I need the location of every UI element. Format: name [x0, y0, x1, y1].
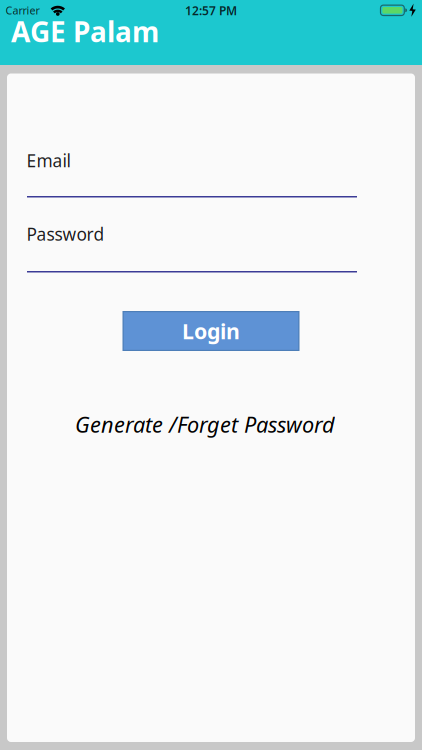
staticText: Password	[26, 222, 104, 245]
button[interactable]: Password	[27, 223, 357, 272]
staticText: AGE Palam	[11, 13, 159, 50]
staticText: Login	[182, 317, 240, 345]
button[interactable]: Email	[27, 150, 357, 197]
button[interactable]: Login	[122, 311, 299, 351]
staticText: Carrier	[5, 3, 39, 17]
staticText: Generate /Forget Password	[75, 409, 335, 439]
staticText: 12:57 PM	[185, 3, 237, 18]
button[interactable]: Generate /Forget Password	[75, 409, 335, 439]
staticText: Email	[26, 149, 70, 172]
